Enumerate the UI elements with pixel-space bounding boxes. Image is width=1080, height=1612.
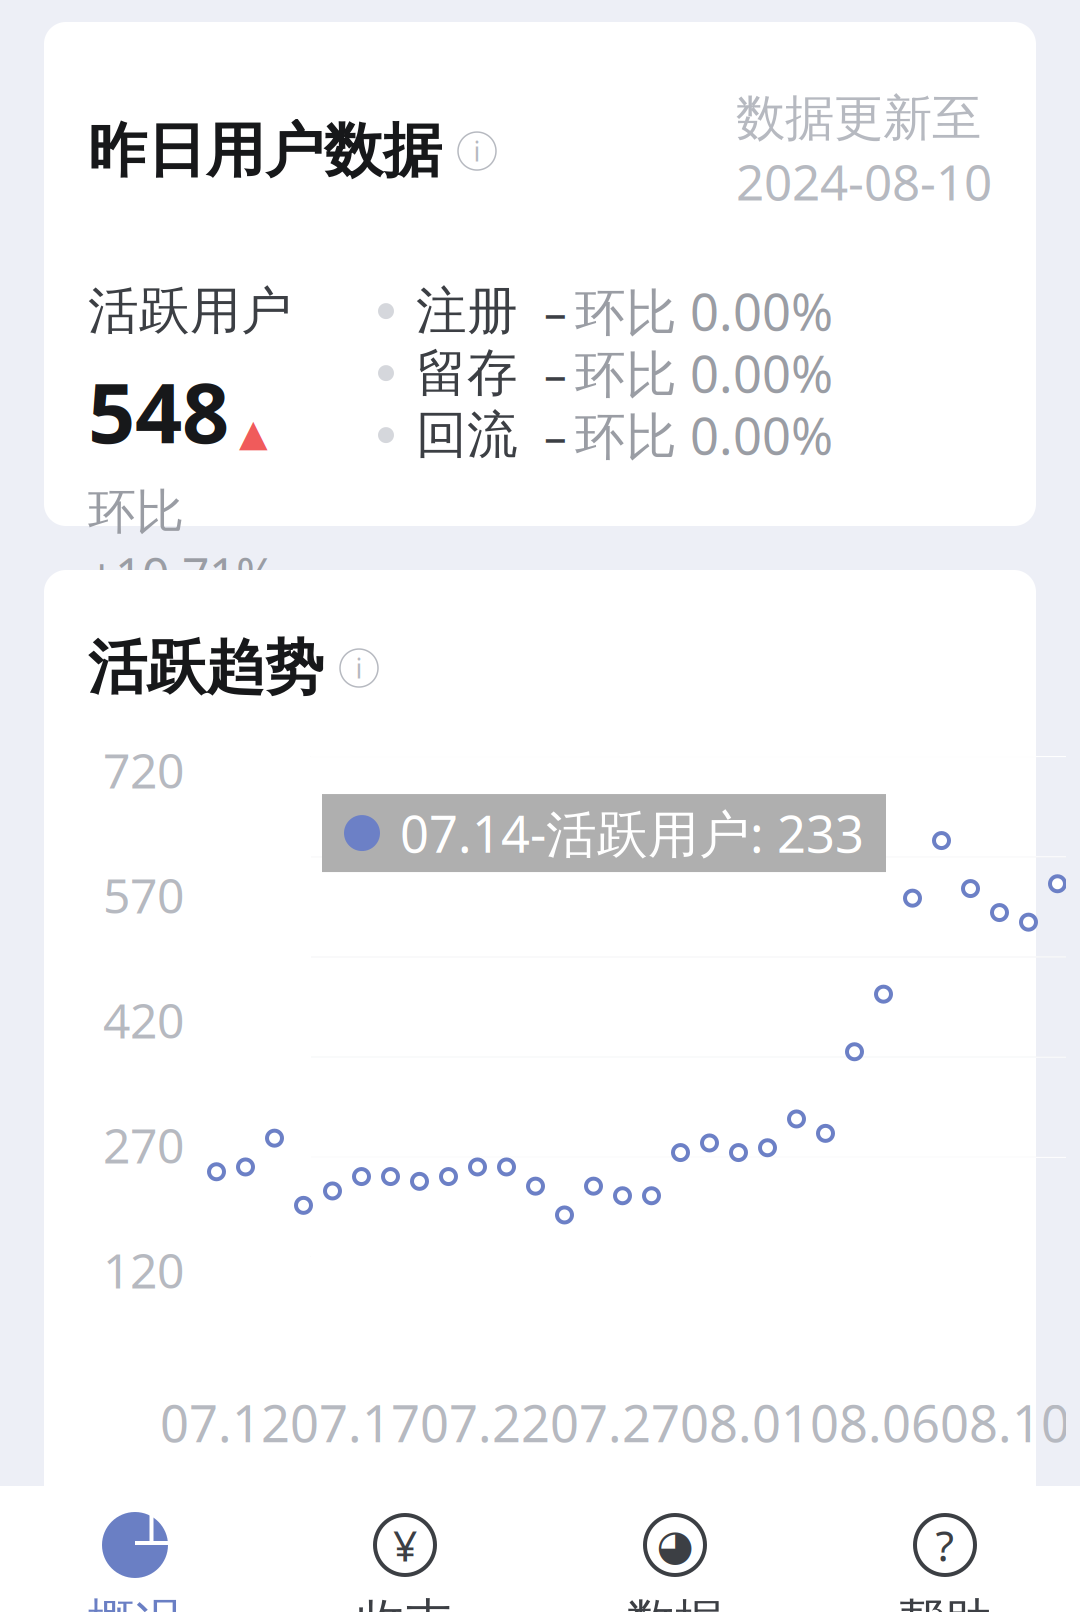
staticText: 720 <box>103 738 184 802</box>
staticText: 08.01 <box>680 1389 810 1456</box>
staticText: – <box>544 281 567 341</box>
button[interactable]: 注册用户 <box>386 1500 642 1566</box>
staticText: – <box>544 343 567 403</box>
staticText: i <box>473 133 480 169</box>
staticText: 07.14-活跃用户: 233 <box>400 799 864 867</box>
staticText: 07.12 <box>160 1389 290 1456</box>
staticText: ¥ <box>393 1517 417 1573</box>
staticText: 留存 <box>416 342 518 404</box>
button[interactable]: ¥ <box>270 1488 540 1612</box>
staticText: 环比 0.00% <box>575 401 833 469</box>
staticText: i <box>355 650 362 686</box>
staticText: 数据 <box>627 1592 723 1612</box>
staticText: 环比 0.00% <box>575 277 833 345</box>
staticText: 570 <box>103 863 184 927</box>
staticText: 注册用户 <box>430 1500 642 1566</box>
staticText: ◕ <box>656 1521 693 1569</box>
staticText: – <box>544 405 567 465</box>
staticText: 收支 <box>357 1592 453 1612</box>
staticText: 08.10 <box>940 1389 1070 1456</box>
button[interactable]: 留存用户 <box>684 1500 940 1566</box>
button[interactable]: 昨日用户数据说明 <box>88 115 496 187</box>
staticText: 548 <box>88 356 229 466</box>
staticText: 注册 <box>416 280 518 342</box>
staticText: 活跃用户 <box>88 280 292 342</box>
button[interactable]: 概况 <box>0 1488 270 1612</box>
staticText: 07.27 <box>550 1389 680 1456</box>
staticText: 活跃趋势 <box>88 632 324 704</box>
staticText: 120 <box>103 1238 184 1302</box>
staticText: 帮助 <box>897 1592 993 1612</box>
staticText: 270 <box>103 1113 184 1177</box>
staticText: 数据更新至2024-08-10 <box>736 88 992 214</box>
staticText: 08.06 <box>810 1389 940 1456</box>
button[interactable]: 活跃用户 <box>88 1500 344 1566</box>
staticText: 留存用户 <box>728 1500 940 1566</box>
button[interactable]: 活跃趋势说明 <box>88 632 378 704</box>
button[interactable]: ? <box>810 1488 1080 1612</box>
staticText: 环比 0.00% <box>575 339 833 407</box>
staticText: 环比 +10.71% <box>88 478 276 606</box>
staticText: ? <box>935 1517 954 1573</box>
staticText: 概况 <box>87 1592 183 1612</box>
staticText: 07.17 <box>290 1389 420 1456</box>
staticText: 07.22 <box>420 1389 550 1456</box>
staticText: 420 <box>103 988 184 1052</box>
staticText: ▲ <box>239 412 268 454</box>
staticText: 活跃用户 <box>132 1500 344 1566</box>
staticText: 回流 <box>416 404 518 466</box>
button[interactable]: ◕ <box>540 1488 810 1612</box>
staticText: 昨日用户数据 <box>88 115 442 187</box>
